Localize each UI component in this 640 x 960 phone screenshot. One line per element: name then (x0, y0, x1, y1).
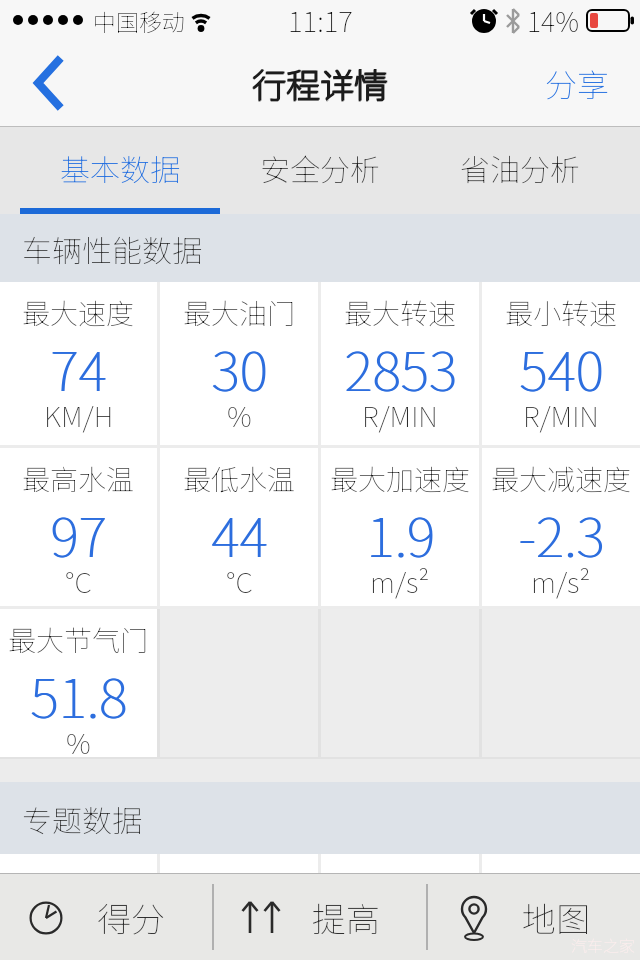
staticText: 中国移动 (93, 4, 185, 37)
staticText: °C (65, 561, 92, 602)
staticText: 车辆性能数据 (22, 227, 202, 270)
staticText: 省油分析 (460, 146, 580, 189)
staticText: % (66, 722, 91, 763)
staticText: 11:17 (288, 0, 353, 40)
staticText: m/s² (531, 561, 591, 602)
staticText: °C (226, 561, 253, 602)
staticText: R/MIN (523, 395, 599, 436)
button[interactable]: 地图 (428, 874, 640, 960)
button[interactable]: 最大加速度 (321, 448, 479, 606)
staticText: 分享 (545, 60, 610, 106)
staticText: 提高 (312, 893, 380, 942)
staticText: R/MIN (362, 395, 438, 436)
staticText: 2853 (344, 328, 457, 406)
button[interactable]: 安全分析 (220, 127, 420, 214)
staticText: 最大节气门 (8, 619, 149, 660)
button[interactable]: 分享 (545, 60, 610, 106)
staticText: 74 (51, 328, 108, 406)
staticText: 2853 (345, 328, 458, 406)
button[interactable]: 得分 (0, 874, 212, 960)
staticText: 97 (51, 494, 108, 572)
button[interactable]: 最大节气门 (0, 609, 157, 757)
button[interactable] (0, 40, 80, 126)
staticText: 最高水温 (22, 458, 135, 499)
staticText: 30 (211, 328, 268, 406)
staticText: 行程详情 (252, 59, 388, 108)
staticText: m/s² (370, 561, 430, 602)
staticText: 安全分析 (260, 146, 380, 189)
button[interactable]: 省油分析 (420, 127, 620, 214)
staticText: 1.9 (367, 494, 436, 572)
staticText: 51.8 (31, 655, 128, 733)
staticText: 14% (527, 1, 579, 40)
staticText: 540 (520, 328, 605, 406)
staticText: 51.8 (30, 655, 127, 733)
staticText: 行程详情 (252, 60, 388, 109)
button[interactable]: 最高水温 (0, 448, 157, 606)
staticText: 最大转速 (344, 292, 457, 333)
staticText: 74 (50, 328, 107, 406)
button[interactable]: 最低水温 (160, 448, 318, 606)
button[interactable]: 提高 (214, 874, 426, 960)
staticText: 基本数据 (60, 146, 180, 189)
staticText: 1.9 (366, 494, 435, 572)
button[interactable]: 最大减速度 (482, 448, 640, 606)
staticText: 44 (212, 494, 269, 572)
staticText: 最大减速度 (491, 458, 632, 499)
staticText: 30 (212, 328, 269, 406)
staticText: 专题数据 (22, 797, 142, 840)
staticText: % (227, 395, 252, 436)
staticText: 行程详情 (253, 59, 389, 108)
staticText: KM/H (44, 395, 114, 436)
button[interactable]: 最大转速 (321, 282, 479, 445)
button[interactable]: 最大速度 (0, 282, 157, 445)
staticText: 97 (50, 494, 107, 572)
staticText: 44 (211, 494, 268, 572)
button[interactable]: 基本数据 (20, 127, 220, 214)
staticText: 得分 (97, 893, 165, 942)
staticText: 地图 (522, 893, 590, 942)
staticText: -2.3 (518, 494, 605, 572)
staticText: 最大油门 (183, 292, 296, 333)
staticText: 汽车之家 (571, 933, 636, 956)
staticText: 540 (519, 328, 604, 406)
button[interactable]: 最小转速 (482, 282, 640, 445)
staticText: 最大加速度 (330, 458, 471, 499)
staticText: 最大速度 (22, 292, 135, 333)
button[interactable]: 最大油门 (160, 282, 318, 445)
staticText: 最低水温 (183, 458, 296, 499)
staticText: 最小转速 (505, 292, 618, 333)
staticText: -2.3 (519, 494, 606, 572)
